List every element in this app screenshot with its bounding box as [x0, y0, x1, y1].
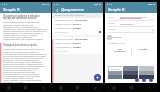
staticText: Simple R [108, 7, 125, 12]
staticText: Площадка 1 [120, 22, 135, 25]
staticText: Заводской номер [55, 19, 74, 22]
staticText: Выполнение работ по договору подряда осу… [3, 21, 48, 41]
staticText: заявки на поставку товаров [55, 14, 103, 17]
button[interactable]: Home [75, 85, 80, 90]
staticText: Указанные работы в объёме, предусмотренн… [3, 14, 48, 20]
staticText: Восточный Мурманск [120, 15, 147, 18]
staticText: Тип телефона [108, 47, 131, 53]
button[interactable]: Home [23, 85, 28, 90]
staticText: Модель подачи [55, 23, 72, 26]
staticText: Подрядчик несёт ответственность за качес… [3, 48, 48, 83]
staticText: 820 М3 [73, 42, 81, 45]
staticText: Наименование [55, 27, 72, 30]
staticText: 8801978263 [75, 19, 88, 22]
button[interactable]: Action [149, 78, 153, 82]
staticText: Адрес [108, 16, 114, 19]
button[interactable]: Адрес [108, 15, 154, 19]
button[interactable]: Заводской номер [52, 37, 103, 54]
button[interactable]: Back [40, 85, 45, 90]
staticText: 8801978263 [75, 38, 88, 41]
button[interactable]: Заводской номер [52, 18, 103, 35]
button[interactable]: Action [142, 78, 146, 82]
staticText: Телефон [132, 47, 154, 50]
button[interactable]: Бригада [108, 28, 154, 31]
button[interactable]: Отметка [108, 36, 154, 39]
button[interactable]: Recents [111, 85, 116, 90]
staticText: Заводской номер [55, 38, 74, 41]
staticText: Отметка [112, 36, 122, 39]
staticText: Бригада [108, 28, 117, 31]
staticText: 820 М3 [73, 23, 81, 26]
button[interactable]: Home [129, 85, 134, 90]
button[interactable]: Recents [6, 85, 11, 90]
staticText: Модель подачи [55, 42, 72, 45]
staticText: вс. объекта / ток [108, 42, 125, 45]
button[interactable] [108, 66, 122, 79]
button[interactable]: Back [55, 8, 59, 12]
staticText: Simple R [3, 7, 20, 12]
button[interactable] [139, 66, 154, 79]
staticText: Документы [61, 7, 84, 12]
staticText: заявка [73, 27, 81, 30]
staticText: ИЮНЬ 2024 [110, 68, 121, 71]
button[interactable]: Back [92, 85, 97, 90]
button[interactable]: Back [146, 85, 151, 90]
staticText: Наименование [55, 46, 72, 49]
staticText: от 12.08.2024 г. [55, 31, 69, 34]
button[interactable]: Action [135, 78, 139, 82]
button[interactable]: Add [94, 74, 101, 81]
button[interactable] [123, 66, 138, 79]
staticText: Порядок расчётов и сроки [3, 43, 38, 47]
button[interactable]: Recents [58, 85, 63, 90]
staticText: от 12.08.2024 г. [55, 50, 69, 53]
staticText: Объект [108, 22, 116, 25]
staticText: заявка [73, 46, 81, 49]
button[interactable]: Объект [108, 22, 154, 25]
